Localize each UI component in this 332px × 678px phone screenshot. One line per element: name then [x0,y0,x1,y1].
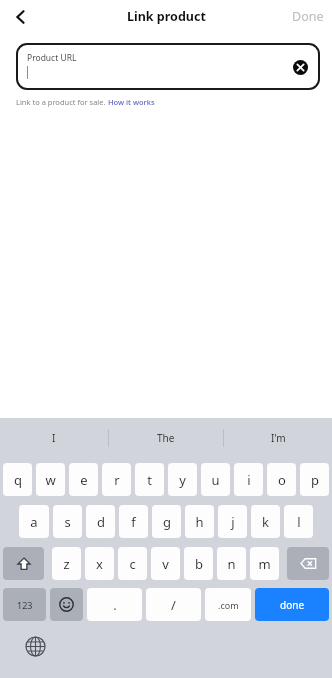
button[interactable]: I [0,418,108,458]
button[interactable]: Shift [3,547,44,580]
staticText: Link to a product for sale. [16,97,108,107]
staticText: a [30,513,38,531]
staticText: .com [218,599,239,611]
staticText: h [195,513,204,531]
button[interactable]: p [300,463,329,496]
staticText: / [171,596,176,614]
staticText: j [231,513,235,531]
button[interactable]: Back [4,0,38,33]
staticText: f [131,513,136,531]
button[interactable]: v [151,547,180,580]
button[interactable]: g [152,505,181,538]
button[interactable]: I'm [224,418,332,458]
staticText: s [64,513,71,531]
staticText: r [114,471,120,489]
staticText: l [297,513,301,531]
staticText: q [14,471,22,489]
staticText: g [163,513,171,531]
button[interactable]: n [217,547,246,580]
button[interactable]: f [119,505,148,538]
staticText: n [227,555,236,573]
staticText: How it works [108,97,155,107]
staticText: c [129,555,136,573]
button[interactable]: . [87,588,142,621]
staticText: e [80,471,88,489]
staticText: done [280,598,305,612]
button[interactable]: .com [205,588,251,621]
staticText: The [157,431,175,445]
button[interactable]: The [109,418,223,458]
staticText: v [162,555,169,573]
button[interactable]: done [255,588,329,621]
staticText: 123 [17,599,33,611]
button[interactable]: Backspace [287,547,329,580]
button[interactable]: Done [292,8,324,25]
button[interactable]: j [218,505,247,538]
button[interactable]: z [52,547,81,580]
button[interactable]: h [185,505,214,538]
staticText: k [262,513,269,531]
staticText: i [247,471,251,489]
button[interactable]: s [53,505,82,538]
staticText: Link product [127,8,206,25]
button[interactable]: Clear text [289,56,311,78]
button[interactable]: l [284,505,313,538]
staticText: u [211,471,220,489]
button[interactable]: m [250,547,279,580]
button[interactable]: Emoji [50,588,83,621]
staticText: . [113,596,117,614]
staticText: y [179,471,186,489]
button[interactable]: Product URL [16,43,320,90]
button[interactable]: k [251,505,280,538]
staticText: Done [292,8,324,25]
button[interactable]: o [267,463,296,496]
staticText: I [52,431,56,445]
staticText: d [97,513,105,531]
button[interactable]: a [19,505,49,538]
button[interactable]: t [135,463,164,496]
staticText: x [96,555,103,573]
button[interactable]: How it works [108,97,155,107]
button[interactable]: u [201,463,230,496]
staticText: z [63,555,70,573]
button[interactable]: r [102,463,131,496]
button[interactable]: 123 [3,588,46,621]
staticText: p [311,471,319,489]
button[interactable]: y [168,463,197,496]
button[interactable]: c [118,547,147,580]
button[interactable]: w [36,463,65,496]
button[interactable]: i [234,463,263,496]
button[interactable]: / [146,588,201,621]
staticText: o [278,471,286,489]
button[interactable]: b [184,547,213,580]
staticText: m [258,555,271,573]
staticText: t [147,471,152,489]
staticText: w [45,471,56,489]
button[interactable]: q [3,463,32,496]
staticText: I'm [271,431,286,445]
button[interactable]: e [69,463,98,496]
button[interactable]: Switch keyboard language [22,633,48,659]
button[interactable]: x [85,547,114,580]
staticText: b [195,555,203,573]
button[interactable]: d [86,505,115,538]
staticText: Product URL [27,52,77,64]
